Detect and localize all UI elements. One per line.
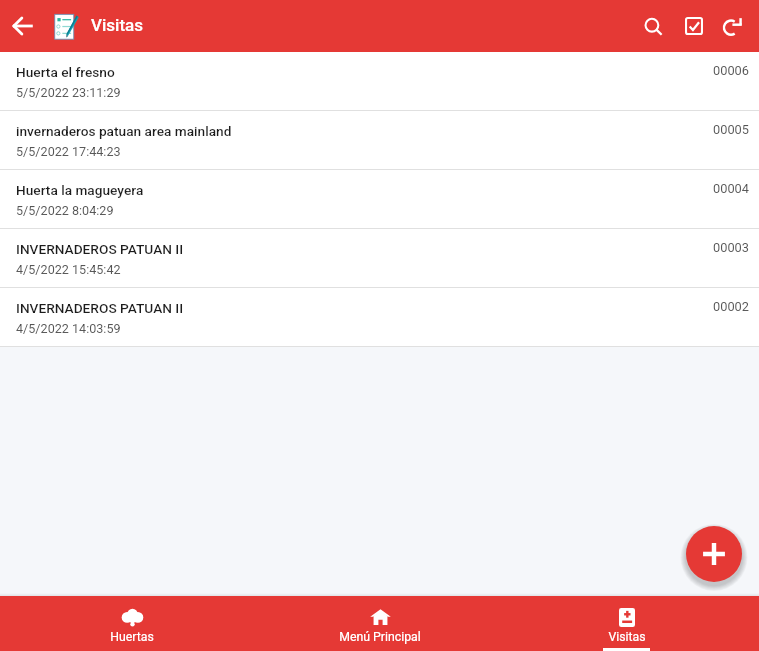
staticText: Huertas <box>110 630 154 644</box>
button[interactable]: invernaderos patuan area mainland <box>0 111 759 169</box>
staticText: Menú Principal <box>339 630 421 644</box>
staticText: Visitas <box>91 15 143 35</box>
staticText: 5/5/2022 17:44:23 <box>16 144 121 159</box>
button[interactable]: INVERNADEROS PATUAN II <box>0 229 759 287</box>
staticText: 00005 <box>713 122 749 137</box>
staticText: Huerta la magueyera <box>16 182 144 198</box>
staticText: Visitas <box>608 630 646 644</box>
button[interactable]: INVERNADEROS PATUAN II <box>0 288 759 346</box>
button[interactable]: Huerta la magueyera <box>0 170 759 228</box>
staticText: 4/5/2022 15:45:42 <box>16 262 121 277</box>
button[interactable]: Huerta el fresno <box>0 52 759 110</box>
staticText: 00006 <box>713 63 749 78</box>
button[interactable]: Menú Principal <box>253 596 506 651</box>
staticText: invernaderos patuan area mainland <box>16 123 232 139</box>
button[interactable]: Add visit <box>686 526 742 582</box>
staticText: INVERNADEROS PATUAN II <box>16 300 184 316</box>
staticText: 5/5/2022 23:11:29 <box>16 85 121 100</box>
button[interactable]: Visitas <box>506 596 759 651</box>
button[interactable]: Search <box>632 0 672 52</box>
staticText: 4/5/2022 14:03:59 <box>16 321 121 336</box>
staticText: 5/5/2022 8:04:29 <box>16 203 114 218</box>
button[interactable]: Back <box>0 0 47 52</box>
staticText: INVERNADEROS PATUAN II <box>16 241 184 257</box>
staticText: 00002 <box>713 299 749 314</box>
button[interactable]: Refresh <box>712 0 752 52</box>
button[interactable]: Huertas <box>0 596 253 651</box>
staticText: 00003 <box>713 240 749 255</box>
staticText: Huerta el fresno <box>16 64 115 80</box>
staticText: 00004 <box>713 181 749 196</box>
button[interactable]: Select all <box>672 0 712 52</box>
